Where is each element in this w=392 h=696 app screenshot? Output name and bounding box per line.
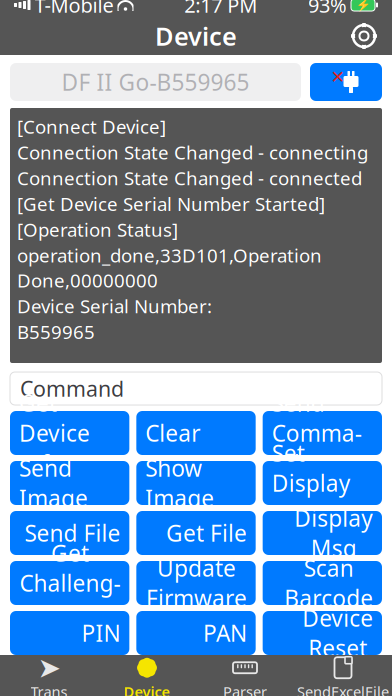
staticText: Device — [155, 19, 237, 53]
button[interactable]: Send File — [10, 511, 129, 555]
staticText: Device Serial Number: — [17, 293, 212, 318]
staticText: [Operation Status] — [17, 217, 178, 242]
button[interactable]: SendExcelFile — [294, 655, 392, 696]
button[interactable]: Set Display Image — [263, 461, 382, 505]
staticText: Send Command — [272, 388, 362, 478]
button[interactable]: Get Challenge — [10, 561, 129, 605]
button[interactable]: Device Reset — [263, 611, 382, 655]
staticText: Send File — [24, 518, 120, 548]
button[interactable]: ➤ — [0, 655, 98, 696]
staticText: Connection State Changed - connecting — [17, 140, 368, 165]
button[interactable]: Settings — [342, 17, 386, 55]
staticText: Parser — [223, 682, 267, 696]
staticText: PAN — [203, 618, 247, 648]
button[interactable]: Disconnect device — [310, 63, 382, 101]
staticText: [Connect Device] — [17, 114, 166, 139]
button[interactable]: Send Command — [263, 411, 382, 455]
button[interactable]: Send Image — [10, 461, 129, 505]
staticText: Get Challenge — [19, 538, 120, 628]
staticText: Trans — [30, 682, 67, 696]
staticText: 93% — [308, 0, 347, 18]
staticText: SendExcelFile — [297, 682, 389, 696]
button[interactable]: Display Msg — [263, 511, 382, 555]
staticText: Command — [20, 374, 124, 403]
staticText: Connection State Changed - connected — [17, 166, 362, 190]
button[interactable]: Show Image — [136, 461, 256, 505]
staticText: ⚡ — [355, 0, 370, 12]
staticText: Update Firmware — [146, 553, 247, 613]
staticText: ➤ — [37, 652, 60, 684]
staticText: Send Image — [19, 453, 88, 513]
button[interactable]: DF II Go-B559965 — [10, 63, 301, 101]
staticText: 2:17 PM — [184, 0, 257, 18]
staticText: Device Reset — [302, 603, 373, 663]
staticText: T-Mobile — [34, 0, 113, 18]
staticText: operation_done,33D101,Operation Done,000… — [17, 243, 322, 293]
staticText: Scan Barcode — [284, 553, 373, 613]
staticText: B559965 — [17, 319, 95, 344]
staticText: Device — [123, 682, 170, 696]
staticText: Clear — [145, 418, 200, 448]
button[interactable]: Clear — [136, 411, 256, 455]
button[interactable]: Device — [98, 655, 196, 696]
staticText: Set Display Image — [272, 438, 351, 528]
staticText: Get Device Info — [19, 388, 90, 478]
button[interactable]: Get File — [136, 511, 256, 555]
staticText: Show Image — [145, 453, 214, 513]
staticText: Display Msg — [294, 503, 373, 563]
staticText: PIN — [81, 618, 120, 648]
staticText: DF II Go-B559965 — [61, 67, 249, 97]
button[interactable]: Command — [10, 372, 382, 405]
staticText: ✕ — [330, 67, 345, 87]
button[interactable]: PIN — [10, 611, 129, 655]
staticText: [Get Device Serial Number Started] — [17, 191, 325, 216]
button[interactable]: Get Device Info — [10, 411, 129, 455]
button[interactable]: PAN — [136, 611, 256, 655]
button[interactable]: Update Firmware — [136, 561, 256, 605]
staticText: Get File — [166, 518, 247, 548]
button[interactable]: Parser — [196, 655, 294, 696]
button[interactable]: Scan Barcode — [263, 561, 382, 605]
